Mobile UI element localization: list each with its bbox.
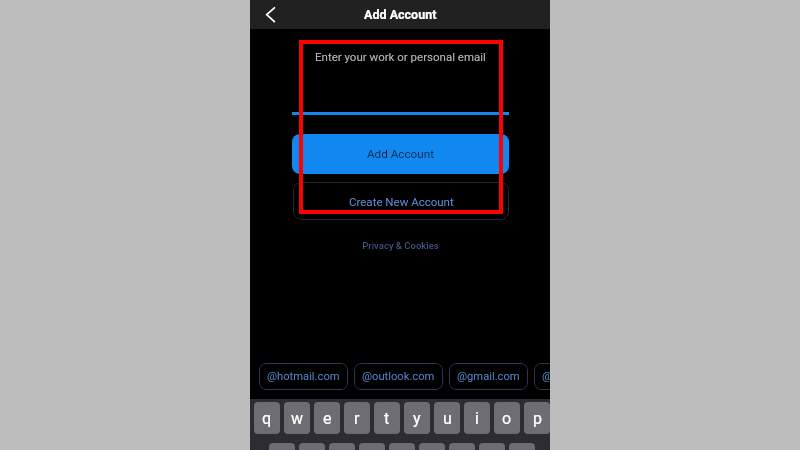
button[interactable]: f: [359, 443, 385, 450]
staticText: r: [354, 409, 360, 428]
staticText: y: [413, 409, 421, 428]
button[interactable]: @gmail.com: [449, 363, 528, 390]
button[interactable]: s: [299, 443, 325, 450]
staticText: Add Account: [364, 7, 437, 22]
staticText: @outlook.com: [362, 370, 435, 383]
button[interactable]: o: [494, 402, 520, 434]
staticText: @hotmail.com: [267, 370, 340, 383]
button[interactable]: t: [374, 402, 400, 434]
staticText: o: [502, 409, 512, 428]
button[interactable]: l: [509, 443, 535, 450]
button[interactable]: Back: [257, 1, 285, 29]
button[interactable]: y: [404, 402, 430, 434]
staticText: q: [262, 409, 272, 428]
button[interactable]: @yahoo.com: [534, 363, 550, 390]
staticText: w: [291, 409, 304, 428]
button[interactable]: k: [479, 443, 505, 450]
button[interactable]: h: [419, 443, 445, 450]
button[interactable]: g: [389, 443, 415, 450]
staticText: Add Account: [367, 147, 434, 161]
button[interactable]: @hotmail.com: [259, 363, 348, 390]
button[interactable]: u: [434, 402, 460, 434]
button[interactable]: Email input field: [292, 33, 509, 114]
staticText: i: [475, 409, 479, 428]
button[interactable]: Create New Account: [293, 182, 509, 220]
button[interactable]: p: [524, 402, 550, 434]
button[interactable]: a: [269, 443, 295, 450]
staticText: u: [443, 409, 452, 428]
button[interactable]: @outlook.com: [354, 363, 443, 390]
staticText: @yahoo.com: [542, 370, 550, 383]
staticText: Create New Account: [349, 195, 454, 208]
button[interactable]: w: [284, 402, 310, 434]
button[interactable]: r: [344, 402, 370, 434]
button[interactable]: j: [449, 443, 475, 450]
staticText: p: [533, 409, 542, 428]
staticText: t: [384, 409, 390, 428]
button[interactable]: Privacy & Cookies: [362, 240, 439, 251]
button[interactable]: e: [314, 402, 340, 434]
staticText: @gmail.com: [457, 370, 520, 383]
button[interactable]: q: [254, 402, 280, 434]
button[interactable]: i: [464, 402, 490, 434]
staticText: e: [323, 409, 332, 428]
button[interactable]: d: [329, 443, 355, 450]
button[interactable]: Add Account: [292, 134, 509, 174]
staticText: Enter your work or personal email: [315, 50, 486, 63]
